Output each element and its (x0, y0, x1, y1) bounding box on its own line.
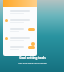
button[interactable]: Action (28, 28, 35, 31)
button[interactable] (3, 16, 37, 25)
button[interactable]: Add goal (31, 42, 35, 46)
button[interactable] (3, 34, 37, 43)
button[interactable] (3, 7, 37, 16)
button[interactable]: Action (28, 46, 35, 49)
staticText: Goal setting tools (19, 56, 46, 60)
button[interactable]: Action (3, 25, 37, 34)
staticText: Set and track your goals (18, 61, 47, 64)
button[interactable]: Action (3, 43, 37, 52)
